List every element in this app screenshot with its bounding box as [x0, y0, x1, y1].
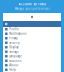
staticText: Help — [9, 68, 16, 71]
button[interactable]: Accounts — [3, 58, 61, 63]
button[interactable]: Profile — [3, 27, 61, 31]
staticText: Display — [9, 45, 18, 49]
button[interactable]: Help — [3, 67, 61, 72]
staticText: Privacy — [9, 36, 17, 40]
staticText: Security — [9, 41, 19, 44]
staticText: Accounts — [9, 59, 21, 62]
button[interactable]: Language — [3, 54, 61, 58]
button[interactable]: Privacy — [3, 36, 61, 40]
button[interactable]: Notifications — [3, 31, 61, 36]
button[interactable]: Security — [3, 40, 61, 45]
staticText: Notifications — [9, 32, 26, 35]
button[interactable]: About — [3, 63, 61, 67]
staticText: Storage — [9, 50, 19, 53]
staticText: About — [9, 63, 18, 67]
staticText: ACCOUNT SETTINGS — [18, 3, 45, 6]
staticText: Manage your preferences — [14, 7, 49, 10]
staticText: Language — [9, 54, 22, 58]
button[interactable]: Storage — [3, 49, 61, 54]
button[interactable]: Display — [3, 45, 61, 49]
staticText: Profile — [9, 27, 19, 31]
